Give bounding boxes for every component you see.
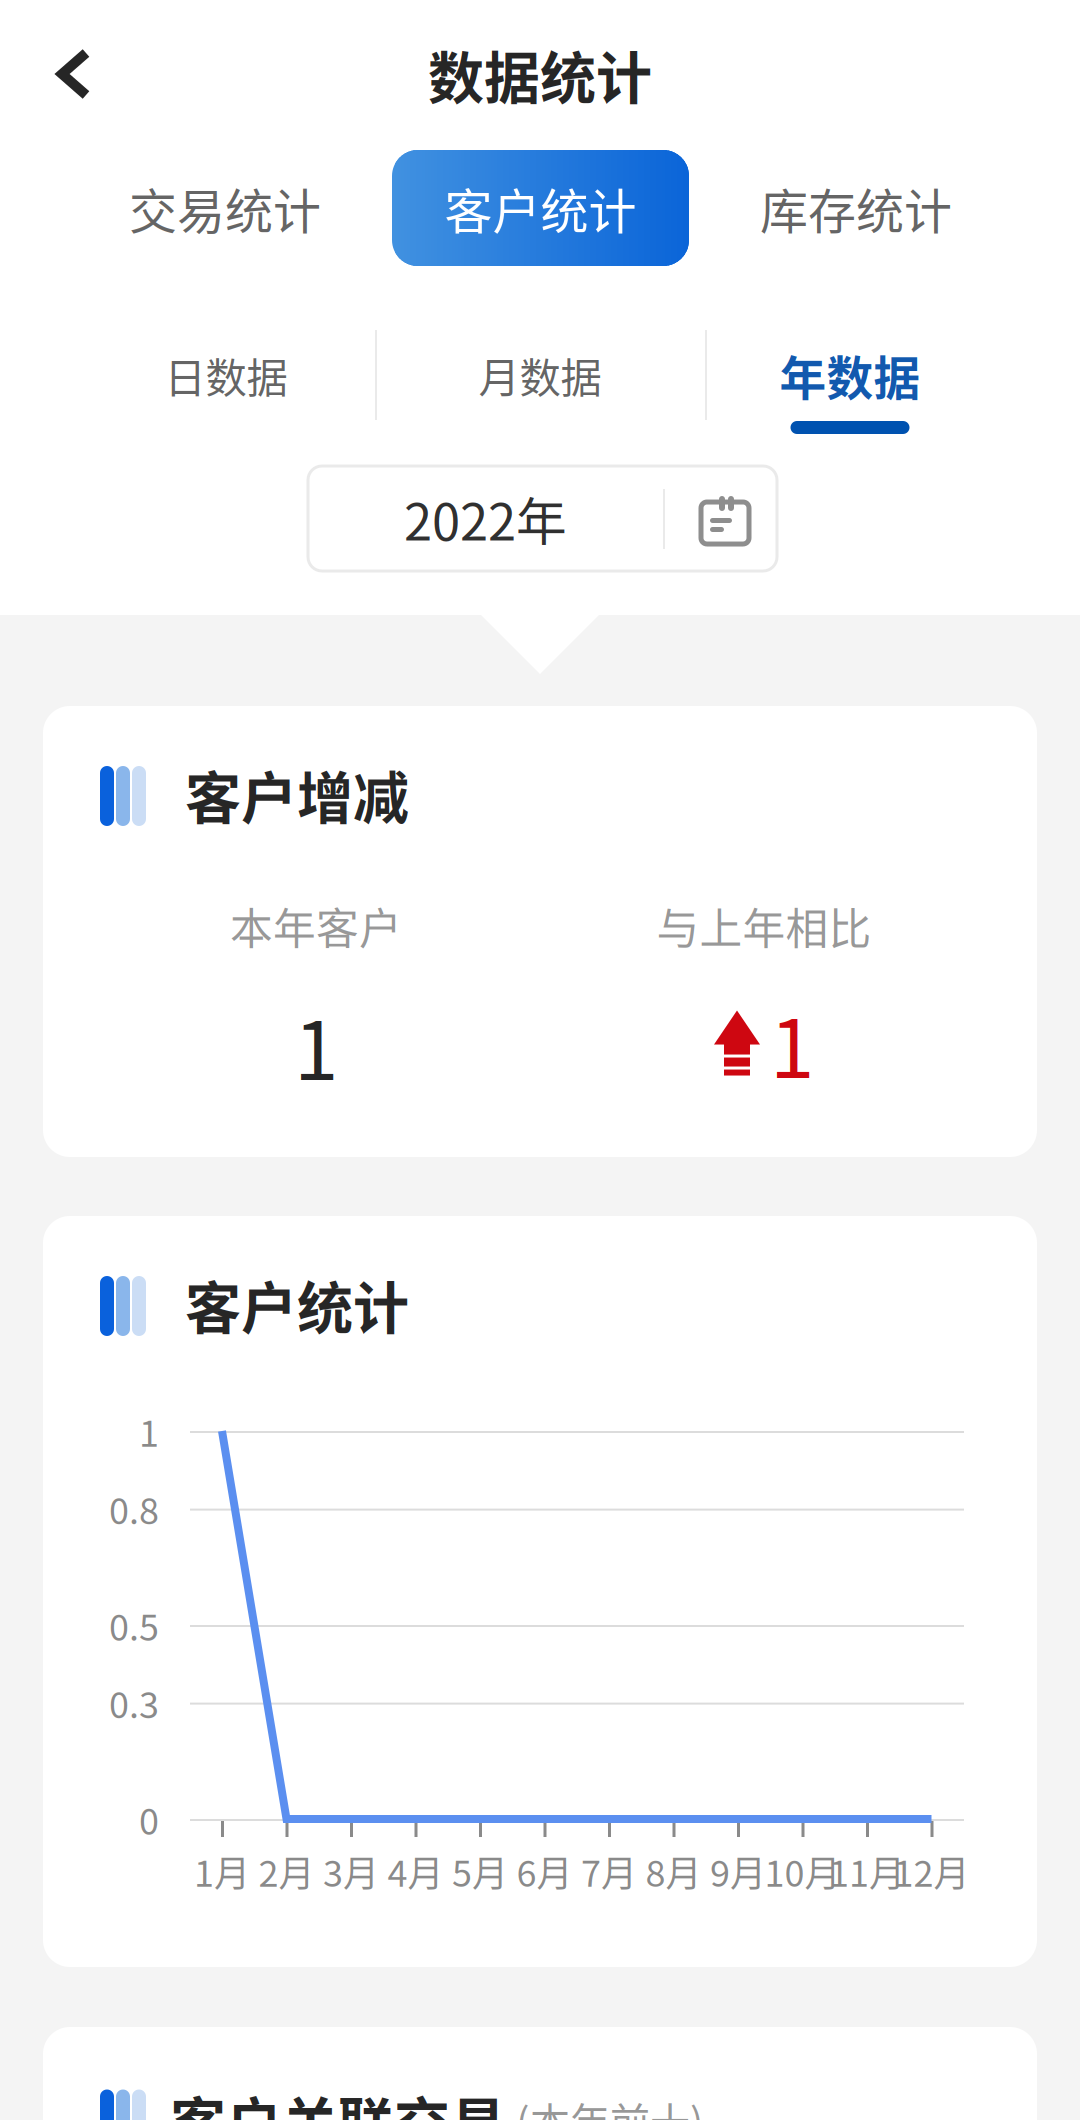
button[interactable]: 交易统计 — [75, 150, 375, 266]
staticText: 1 — [770, 985, 814, 1101]
staticText: 0.5 — [109, 1599, 159, 1651]
staticText: 8月 — [645, 1845, 701, 1897]
staticText: 2月 — [258, 1845, 314, 1897]
staticText: 0 — [139, 1793, 159, 1845]
staticText: 2022年 — [404, 482, 567, 555]
staticText: 客户增减 — [185, 753, 409, 835]
staticText: 数据统计 — [428, 33, 652, 115]
staticText: 6月 — [516, 1845, 572, 1897]
button[interactable]: 年数据 — [750, 329, 950, 434]
staticText: (本年前十) — [516, 2090, 704, 2120]
staticText: 客户统计 — [185, 1263, 409, 1345]
button[interactable]: 月数据 — [440, 329, 640, 421]
staticText: 3月 — [323, 1845, 379, 1897]
staticText: 7月 — [581, 1845, 637, 1897]
staticText: 0.8 — [109, 1482, 159, 1535]
button[interactable]: 日数据 — [126, 329, 326, 421]
staticText: 库存统计 — [760, 173, 952, 243]
staticText: 0.3 — [109, 1676, 159, 1729]
staticText: 11月 — [829, 1845, 905, 1897]
staticText: 10月 — [764, 1845, 840, 1897]
staticText: 9月 — [710, 1845, 766, 1897]
staticText: 客户关联交易 — [170, 2079, 506, 2120]
button[interactable]: 返回 — [20, 19, 128, 129]
button[interactable]: 2022年 — [308, 466, 777, 571]
staticText: 与上年相比 — [656, 895, 871, 957]
staticText: 1 — [139, 1405, 159, 1457]
button[interactable]: 库存统计 — [706, 150, 1006, 266]
staticText: 5月 — [452, 1845, 508, 1897]
staticText: 本年客户 — [230, 895, 402, 957]
staticText: 年数据 — [779, 341, 920, 409]
staticText: 12月 — [893, 1845, 969, 1897]
staticText: 1月 — [194, 1845, 250, 1897]
staticText: 交易统计 — [129, 173, 321, 243]
button[interactable]: 客户统计 — [392, 150, 689, 266]
staticText: 月数据 — [478, 345, 601, 405]
staticText: 4月 — [387, 1845, 443, 1897]
staticText: 1 — [294, 987, 338, 1103]
staticText: 日数据 — [164, 345, 287, 405]
staticText: 客户统计 — [444, 173, 636, 243]
